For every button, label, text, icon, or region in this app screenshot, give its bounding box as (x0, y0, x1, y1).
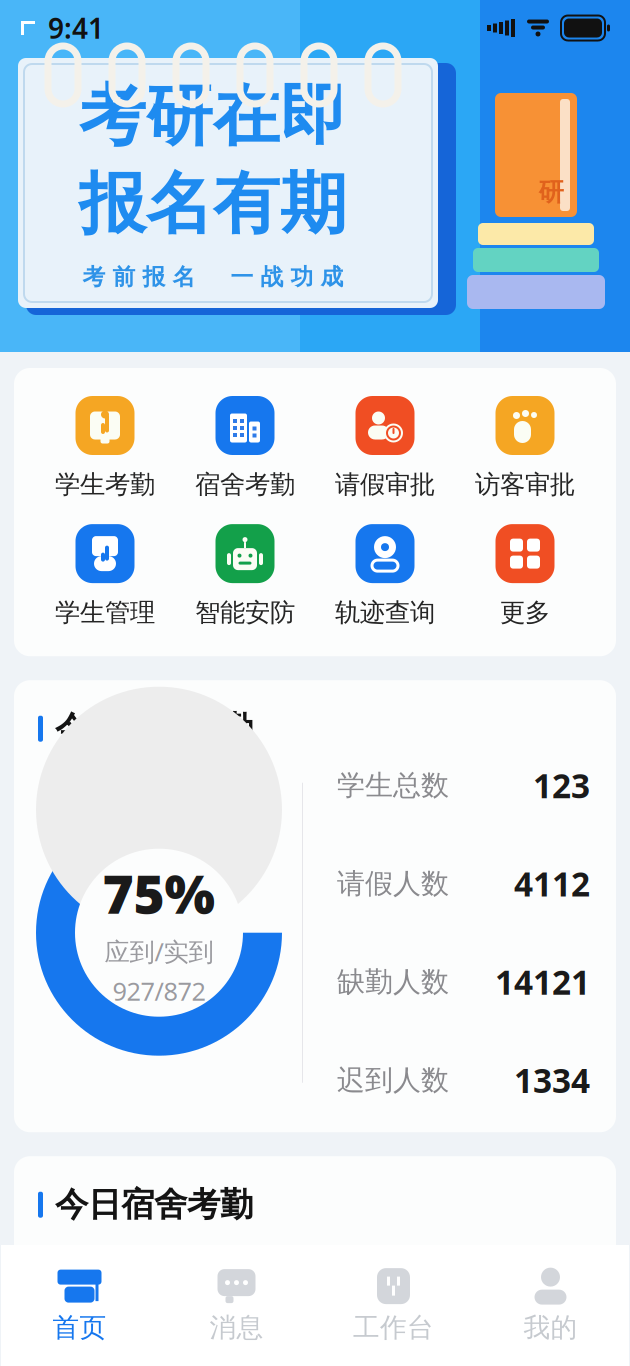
button[interactable]: 更多 (455, 524, 595, 628)
staticText: 今日宿舍考勤 (55, 1184, 253, 1225)
staticText: 今日学生考勤 (55, 708, 253, 749)
button[interactable]: 宿舍考勤 (175, 396, 315, 500)
staticText: 缺勤人数 (337, 965, 449, 999)
button[interactable]: 请假审批 (315, 396, 455, 500)
staticText: 学生管理 (55, 597, 155, 628)
staticText: 应到/实到 (104, 934, 213, 968)
staticText: 报名有期 (79, 163, 347, 245)
button[interactable]: 访客审批 (455, 396, 595, 500)
staticText: 9:41 (48, 9, 104, 47)
staticText: 请假审批 (335, 469, 435, 500)
button[interactable]: 首页 (1, 1250, 158, 1360)
button[interactable]: 智能安防 (175, 524, 315, 628)
staticText: 4112 (514, 861, 590, 906)
button[interactable]: 轨迹查询 (315, 524, 455, 628)
staticText: 研 (538, 176, 563, 207)
button[interactable]: 消息 (158, 1250, 315, 1360)
staticText: 请假人数 (337, 866, 449, 901)
button[interactable]: 我的 (472, 1250, 629, 1360)
staticText: 智能安防 (195, 597, 295, 628)
staticText: 考 前 报 名 一 战 功 成 (82, 263, 343, 291)
staticText: 首页 (52, 1311, 106, 1344)
staticText: 迟到人数 (337, 1063, 449, 1097)
staticText: 访客审批 (475, 469, 575, 500)
staticText: 学生考勤 (55, 469, 155, 500)
staticText: 14121 (495, 960, 590, 1004)
staticText: 75% (102, 858, 215, 928)
staticText: 消息 (209, 1311, 263, 1344)
staticText: 1334 (514, 1058, 590, 1102)
staticText: 更多 (500, 597, 550, 628)
staticText: 123 (533, 763, 590, 807)
button[interactable]: 学生管理 (35, 524, 175, 628)
staticText: 宿舍考勤 (195, 469, 295, 500)
staticText: 我的 (523, 1311, 577, 1344)
staticText: 927/872 (112, 974, 205, 1008)
button[interactable]: 学生考勤 (35, 396, 175, 500)
staticText: 学生总数 (337, 768, 449, 802)
staticText: 考研在即 (79, 75, 347, 157)
staticText: 轨迹查询 (335, 597, 435, 628)
staticText: 工作台 (353, 1311, 434, 1344)
button[interactable]: 工作台 (315, 1250, 472, 1360)
